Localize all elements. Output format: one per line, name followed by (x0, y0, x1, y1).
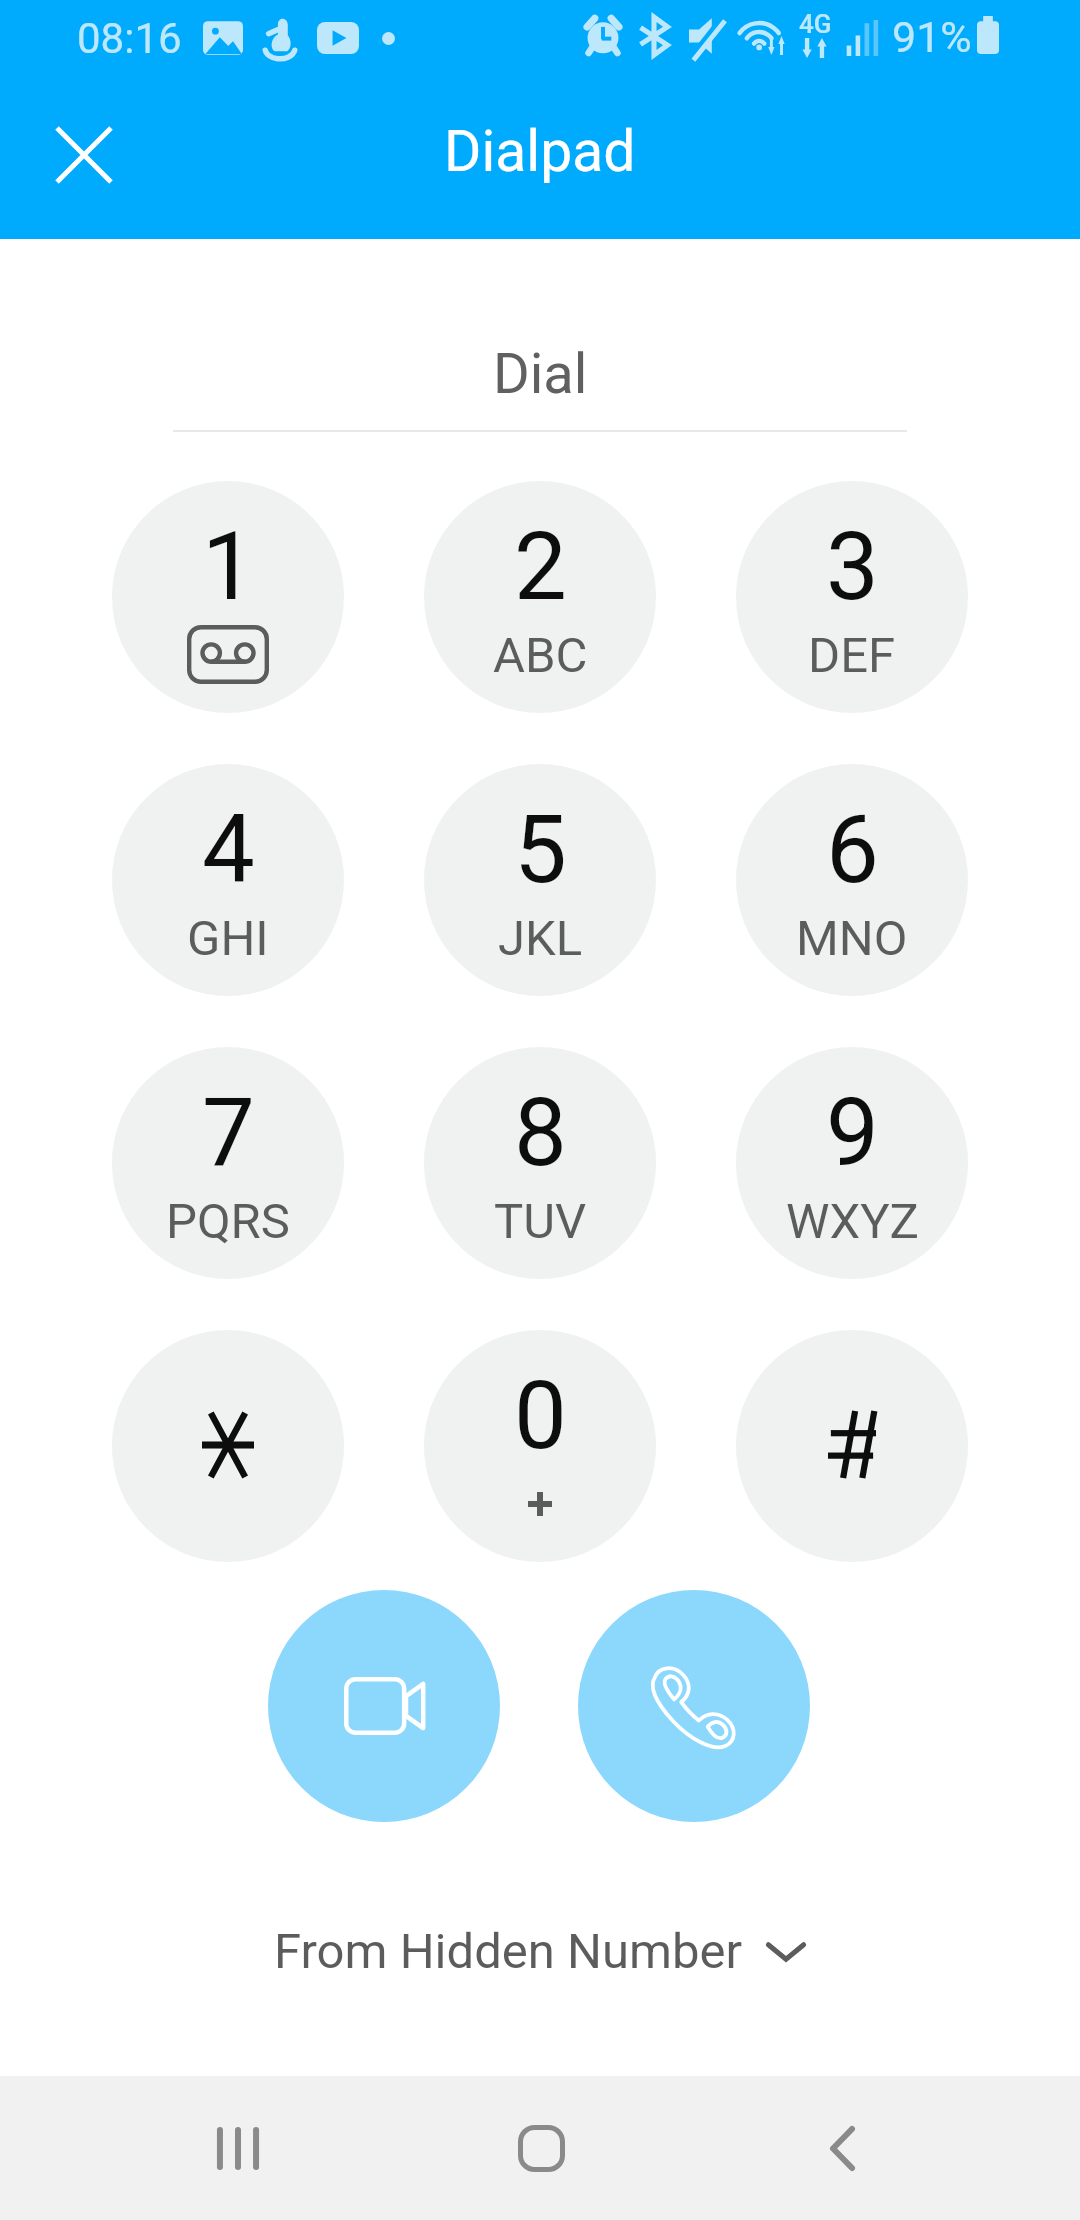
staticText: 91% (892, 12, 972, 62)
staticText: 8 (514, 1078, 567, 1188)
button[interactable]: From Hidden Number (274, 1923, 807, 1980)
button[interactable]: Recents (163, 2076, 313, 2220)
button[interactable]: Home (466, 2076, 616, 2220)
button[interactable]: 0 (424, 1330, 656, 1562)
button[interactable]: 3 (736, 481, 968, 713)
staticText: Dialpad (444, 118, 636, 185)
staticText: GHI (187, 910, 269, 967)
staticText: DEF (808, 627, 896, 684)
button[interactable]: Star (112, 1330, 344, 1562)
staticText: 7 (202, 1078, 255, 1188)
staticText: WXYZ (786, 1193, 919, 1250)
staticText: 2 (514, 512, 567, 622)
button[interactable]: Call (578, 1590, 810, 1822)
staticText: Dial (493, 341, 588, 407)
staticText: JKL (498, 910, 583, 967)
button[interactable]: 2 (424, 481, 656, 713)
staticText: PQRS (166, 1193, 290, 1250)
staticText: 1 (202, 512, 255, 622)
staticText: 08:16 (77, 14, 182, 63)
button[interactable]: 9 (736, 1047, 968, 1279)
button[interactable]: 8 (424, 1047, 656, 1279)
staticText: 9 (826, 1078, 879, 1188)
button[interactable]: 7 (112, 1047, 344, 1279)
button[interactable]: Back (767, 2076, 917, 2220)
staticText: 3 (826, 512, 879, 622)
button[interactable]: Pound (736, 1330, 968, 1562)
button[interactable]: 4 (112, 764, 344, 996)
button[interactable]: 1 (112, 481, 344, 713)
staticText: 0 (514, 1361, 567, 1471)
button[interactable]: 6 (736, 764, 968, 996)
button[interactable]: Close (24, 95, 144, 215)
button[interactable]: 5 (424, 764, 656, 996)
staticText: 5 (514, 795, 567, 905)
staticText: TUV (494, 1193, 587, 1250)
staticText: 6 (826, 795, 879, 905)
staticText: From Hidden Number (274, 1923, 743, 1980)
staticText: MNO (796, 910, 908, 967)
staticText: 4G (799, 9, 832, 39)
button[interactable]: Video call (268, 1590, 500, 1822)
staticText: 4 (202, 795, 255, 905)
staticText: ABC (493, 627, 588, 684)
